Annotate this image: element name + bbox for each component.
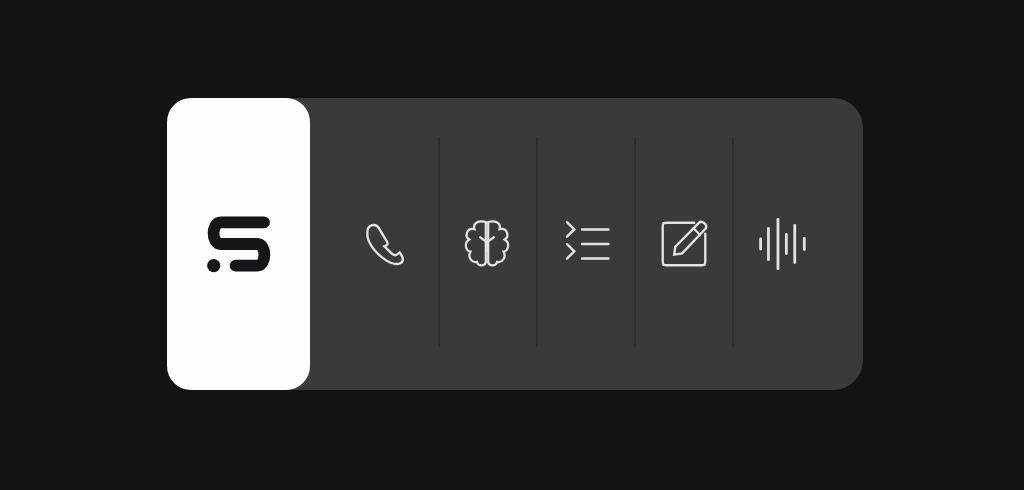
button[interactable]: Voice	[734, 139, 832, 349]
button[interactable]: Memory	[438, 139, 536, 349]
button[interactable]: Call	[339, 139, 437, 349]
button[interactable]: Tasks	[537, 139, 635, 349]
button[interactable]: Sesame home	[167, 98, 310, 390]
button[interactable]: Compose note	[635, 139, 733, 349]
